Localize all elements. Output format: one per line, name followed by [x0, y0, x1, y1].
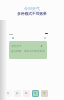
- button[interactable]: 粉: [23, 90, 30, 97]
- staticText: 多云转晴，适合出门散步走走: [11, 49, 45, 52]
- staticText: 绿: [34, 92, 37, 95]
- staticText: 米: [43, 92, 46, 95]
- staticText: 多种模式不同效果: [0, 11, 64, 16]
- other: Share: [12, 37, 14, 39]
- button[interactable]: 灰: [14, 90, 21, 97]
- staticText: 白: [7, 92, 10, 95]
- other: More: [45, 33, 48, 34]
- button[interactable]: 白: [5, 90, 12, 97]
- button[interactable]: 米: [41, 90, 48, 97]
- staticText: 今日天气: [0, 6, 64, 11]
- button[interactable]: 今天天气: [9, 41, 47, 59]
- staticText: 今天天气: [11, 44, 22, 47]
- staticText: 粉: [25, 92, 28, 95]
- staticText: 灰: [16, 92, 19, 95]
- button[interactable]: 绿: [32, 90, 39, 97]
